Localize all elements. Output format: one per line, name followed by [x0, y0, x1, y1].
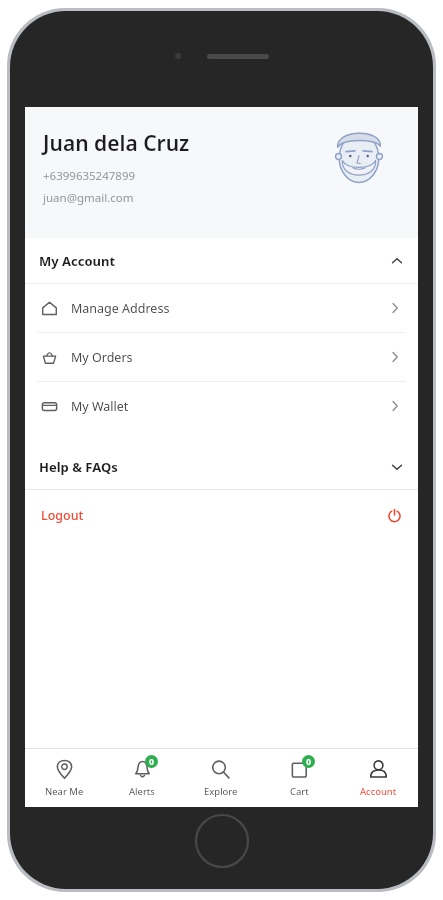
staticText: My Wallet [71, 398, 129, 415]
button[interactable]: 0 [260, 749, 339, 807]
staticText: Near Me [45, 785, 84, 798]
button[interactable]: Logout [25, 490, 418, 540]
button[interactable]: My Orders [25, 333, 418, 381]
staticText: 0 [306, 756, 311, 767]
staticText: Explore [204, 785, 238, 798]
button[interactable]: My Account [25, 238, 418, 283]
staticText: Cart [290, 785, 309, 798]
button[interactable]: 0 [103, 749, 181, 807]
button[interactable]: Manage Address [25, 284, 418, 332]
button[interactable]: Near Me [25, 749, 103, 807]
staticText: Alerts [129, 785, 155, 798]
button[interactable]: Profile photo [326, 125, 392, 191]
staticText: Juan dela Cruz [43, 129, 190, 158]
staticText: My Account [39, 252, 116, 270]
staticText: 0 [149, 756, 154, 767]
staticText: Help & FAQs [39, 458, 118, 476]
staticText: +6399635247899 [43, 168, 136, 184]
staticText: Account [360, 785, 397, 798]
staticText: My Orders [71, 349, 133, 366]
staticText: Logout [41, 507, 84, 524]
button[interactable]: Help & FAQs [25, 444, 418, 489]
button[interactable]: Explore [181, 749, 260, 807]
staticText: juan@gmail.com [43, 190, 134, 206]
button[interactable]: Account [339, 749, 418, 807]
button[interactable]: My Wallet [25, 382, 418, 430]
staticText: Manage Address [71, 300, 170, 317]
